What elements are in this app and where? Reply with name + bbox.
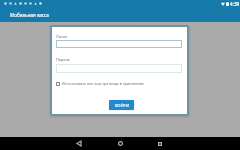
button[interactable]: Home bbox=[114, 137, 126, 150]
button[interactable]: Recent apps bbox=[154, 137, 166, 150]
button[interactable] bbox=[56, 40, 182, 48]
staticText: 4:39 bbox=[230, 1, 240, 7]
button[interactable] bbox=[56, 64, 182, 73]
button[interactable]: Back bbox=[73, 137, 85, 150]
staticText: Использовать пин-код при входе в приложе… bbox=[62, 81, 145, 86]
staticText: Пароль bbox=[56, 57, 70, 62]
button[interactable]: Использовать пин-код при входе в приложе… bbox=[56, 81, 145, 86]
button[interactable]: ВОЙТИ bbox=[109, 100, 134, 110]
staticText: ВОЙТИ bbox=[115, 103, 129, 108]
staticText: Мобильная касса bbox=[10, 12, 49, 18]
staticText: Логин bbox=[56, 34, 68, 39]
